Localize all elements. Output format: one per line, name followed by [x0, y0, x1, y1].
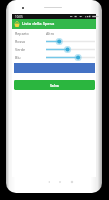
- staticText: Blu: [15, 55, 21, 60]
- button[interactable]: Home: [56, 178, 64, 186]
- button[interactable]: Blu: [12, 53, 96, 61]
- button[interactable]: Rosso: [12, 37, 96, 45]
- staticText: Rosso: [15, 39, 26, 44]
- button[interactable]: Recents: [68, 178, 76, 186]
- staticText: Altro: [46, 31, 55, 36]
- staticText: Verde: [15, 47, 26, 52]
- button[interactable]: Shopping list: [12, 19, 96, 29]
- button[interactable]: Reparto: [12, 29, 96, 37]
- button[interactable]: Back: [45, 178, 53, 186]
- button[interactable]: Salva: [14, 80, 95, 90]
- staticText: 10:05: [15, 15, 23, 19]
- staticText: Lista della Spesa: [22, 21, 55, 27]
- staticText: Salva: [50, 83, 59, 88]
- staticText: Reparto: [15, 31, 29, 36]
- other: Shopping list: [14, 21, 20, 27]
- button[interactable]: Verde: [12, 45, 96, 53]
